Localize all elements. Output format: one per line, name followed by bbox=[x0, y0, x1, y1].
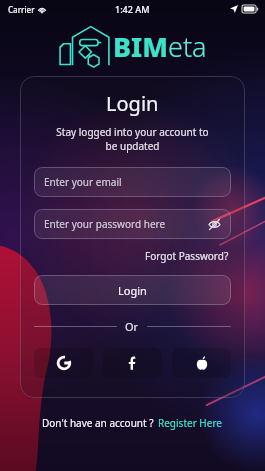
staticText: Enter your email bbox=[44, 175, 122, 189]
staticText: Login bbox=[106, 90, 159, 117]
button[interactable]: Sign in with Facebook bbox=[103, 348, 162, 378]
button[interactable]: Sign in with Apple bbox=[172, 348, 231, 378]
staticText: Stay logged into your account to be upda… bbox=[52, 125, 213, 153]
staticText: Register Here bbox=[158, 416, 222, 430]
button[interactable]: Register Here bbox=[157, 414, 223, 432]
staticText: eta bbox=[168, 28, 207, 65]
staticText: Or bbox=[125, 319, 139, 334]
staticText: Don't have an account ? bbox=[42, 416, 157, 430]
staticText: BIM bbox=[113, 28, 168, 65]
staticText: Enter your password here bbox=[44, 217, 166, 231]
staticText: 1:42 AM bbox=[115, 3, 150, 15]
button[interactable]: Forgot Password? bbox=[143, 247, 231, 265]
other: Show password bbox=[208, 218, 221, 231]
button[interactable]: Enter your password here bbox=[34, 209, 231, 239]
staticText: Login bbox=[118, 283, 147, 298]
button[interactable]: Login bbox=[34, 275, 231, 305]
staticText: Forgot Password? bbox=[145, 249, 229, 263]
button[interactable]: Sign in with Google bbox=[34, 348, 93, 378]
button[interactable]: Enter your email bbox=[34, 167, 231, 197]
staticText: Carrier bbox=[8, 4, 35, 15]
